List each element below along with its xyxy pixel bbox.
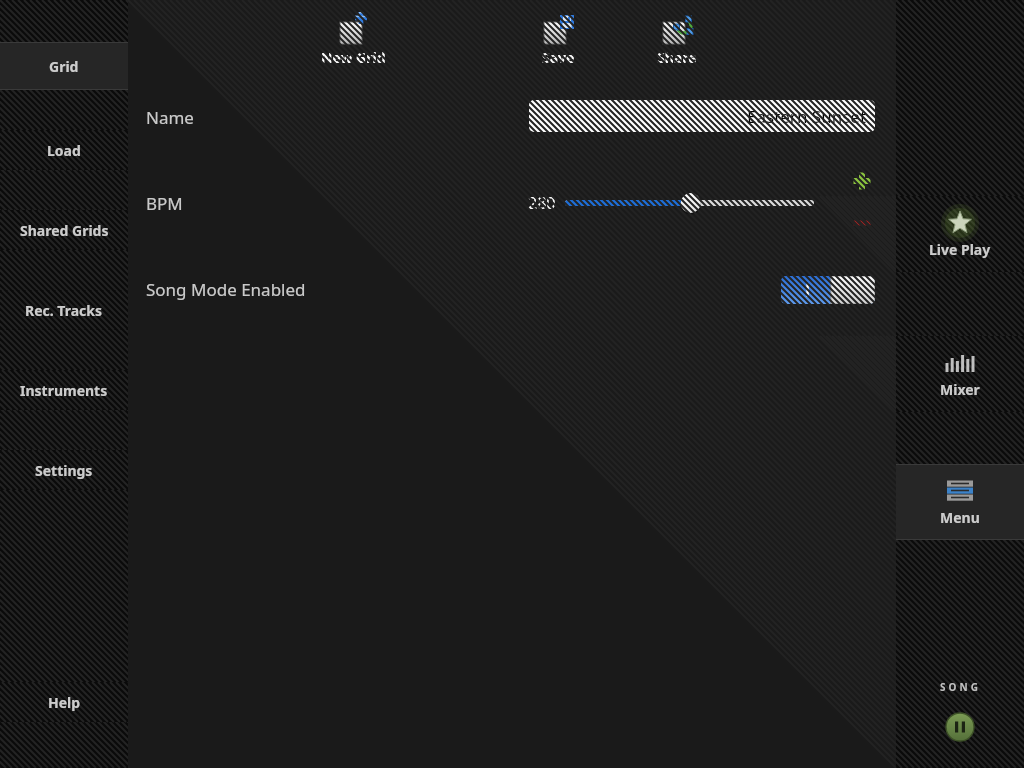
staticText: BPM <box>146 192 183 215</box>
button[interactable]: Eastern Sunset <box>529 100 875 132</box>
button[interactable]: Song Mode toggle <box>781 276 875 304</box>
staticText: 280 <box>528 192 556 214</box>
button[interactable]: Grid <box>0 42 128 90</box>
button[interactable]: Live Play <box>896 196 1024 272</box>
staticText: Name <box>146 106 194 129</box>
button[interactable]: Share <box>649 10 705 71</box>
staticText: Help <box>48 693 81 712</box>
button[interactable]: Settings <box>0 450 128 490</box>
staticText: Menu <box>940 508 980 527</box>
button[interactable]: Decrease BPM <box>846 207 878 239</box>
staticText: Mixer <box>940 380 980 399</box>
staticText: Save <box>542 48 575 67</box>
staticText: Shared Grids <box>20 221 109 240</box>
button[interactable]: Shared Grids <box>0 210 128 250</box>
button[interactable]: Instruments <box>0 370 128 410</box>
button[interactable]: Save <box>530 10 586 71</box>
button[interactable]: Pause song <box>945 712 975 742</box>
button[interactable]: BPM slider <box>563 188 821 218</box>
staticText: SONG <box>940 680 981 694</box>
button[interactable]: Mixer <box>896 336 1024 412</box>
button[interactable]: Menu <box>896 464 1024 540</box>
staticText: Instruments <box>20 381 108 400</box>
staticText: Settings <box>35 461 93 480</box>
button[interactable]: Help <box>0 682 128 722</box>
staticText: Eastern Sunset <box>747 105 867 128</box>
button[interactable]: Load <box>0 130 128 170</box>
button[interactable]: Rec. Tracks <box>0 290 128 330</box>
staticText: Song Mode Enabled <box>146 278 306 301</box>
button[interactable]: Increase BPM <box>846 165 878 197</box>
staticText: Rec. Tracks <box>25 301 103 320</box>
button[interactable]: New Grid <box>313 10 394 71</box>
staticText: Live Play <box>929 240 991 259</box>
staticText: New Grid <box>321 48 386 67</box>
staticText: Share <box>657 48 697 67</box>
staticText: Grid <box>49 57 79 76</box>
staticText: Load <box>47 141 81 160</box>
